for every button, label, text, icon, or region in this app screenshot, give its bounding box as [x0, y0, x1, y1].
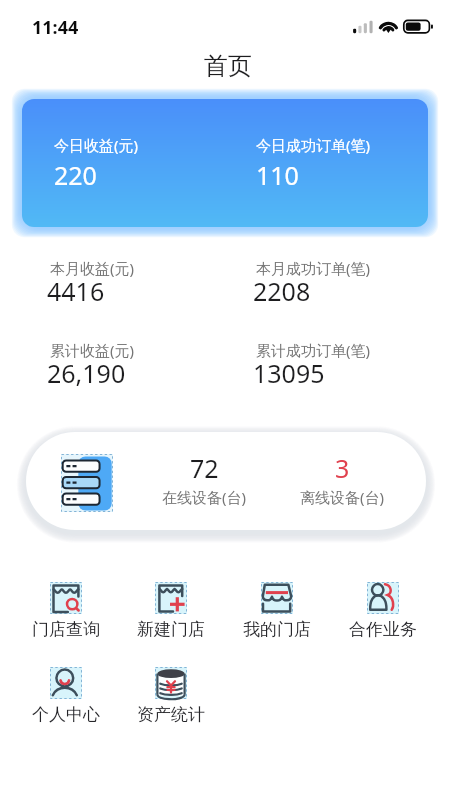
button[interactable]: 累计成功订单(笔) [256, 340, 436, 388]
staticText: 累计收益(元) [50, 340, 135, 360]
staticText: 26,190 [47, 356, 126, 390]
staticText: 11:44 [32, 15, 79, 40]
other: 个人中心 [50, 667, 82, 699]
button[interactable]: 个人中心 [14, 659, 118, 731]
staticText: 新建门店 [137, 619, 205, 640]
staticText: 本月收益(元) [50, 258, 135, 278]
staticText: 13095 [253, 356, 325, 390]
staticText: 3 [335, 451, 350, 485]
staticText: 220 [54, 158, 97, 192]
other: 设备状态 [61, 454, 113, 512]
staticText: 我的门店 [243, 619, 311, 640]
other: 我的门店 [261, 582, 293, 614]
button[interactable]: 本月收益(元) [50, 258, 230, 306]
staticText: 4416 [47, 274, 105, 308]
button[interactable]: 门店查询 [14, 574, 118, 646]
button[interactable]: 资产统计 [119, 659, 223, 731]
button[interactable]: 合作业务 [331, 574, 435, 646]
staticText: 门店查询 [32, 619, 100, 640]
staticText: 合作业务 [349, 619, 417, 640]
staticText: 今日收益(元) [54, 135, 139, 155]
other: 合作业务 [367, 582, 399, 614]
staticText: 本月成功订单(笔) [256, 258, 371, 278]
staticText: 首页 [204, 51, 252, 81]
staticText: 在线设备(台) [162, 487, 247, 507]
button[interactable]: 累计收益(元) [50, 340, 230, 388]
staticText: 今日成功订单(笔) [256, 135, 371, 155]
other: 资产统计 [155, 667, 187, 699]
staticText: 离线设备(台) [300, 487, 385, 507]
staticText: 2208 [253, 274, 311, 308]
button[interactable]: 我的门店 [225, 574, 329, 646]
button[interactable]: 设备状态 [26, 432, 426, 530]
staticText: 资产统计 [137, 704, 205, 725]
other: 新建门店 [155, 582, 187, 614]
staticText: 72 [190, 451, 219, 485]
button[interactable]: 本月成功订单(笔) [256, 258, 436, 306]
other: 门店查询 [50, 582, 82, 614]
button[interactable]: 新建门店 [119, 574, 223, 646]
staticText: 累计成功订单(笔) [256, 340, 371, 360]
staticText: 110 [256, 158, 299, 192]
button[interactable]: 今日收益(元) [22, 99, 428, 227]
staticText: 个人中心 [32, 704, 100, 725]
